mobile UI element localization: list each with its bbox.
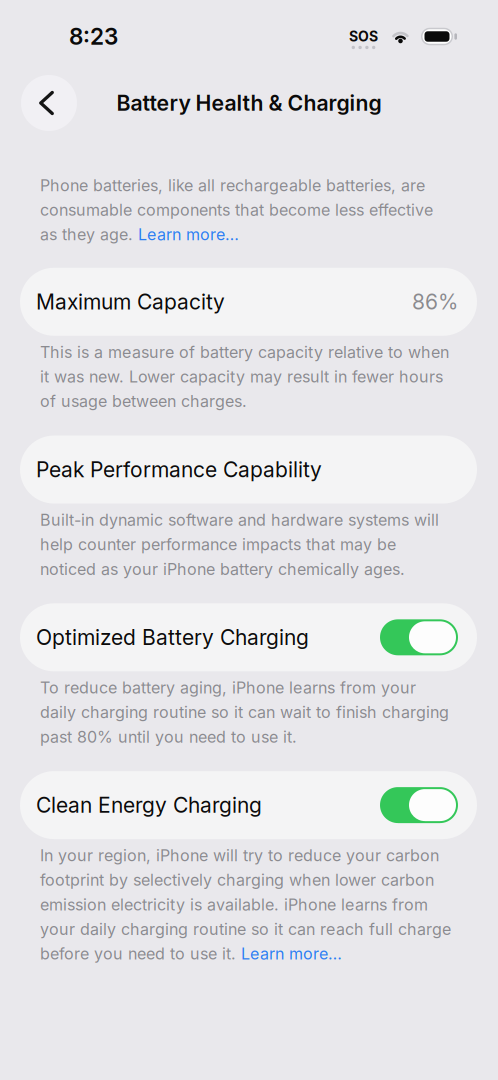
button[interactable]: Maximum Capacity bbox=[20, 268, 477, 336]
staticText: Battery Health & Charging bbox=[116, 90, 381, 116]
staticText: 86% bbox=[412, 289, 458, 314]
staticText: Built-in dynamic software and hardware s… bbox=[40, 508, 439, 581]
staticText: Optimized Battery Charging bbox=[36, 625, 309, 650]
staticText: 8:23 bbox=[69, 23, 118, 50]
staticText: Maximum Capacity bbox=[36, 289, 225, 314]
staticText: SOS bbox=[349, 28, 378, 45]
staticText: Phone batteries, like all rechargeable b… bbox=[40, 173, 433, 247]
button[interactable]: Back bbox=[21, 75, 77, 131]
staticText: Peak Performance Capability bbox=[36, 457, 322, 482]
button[interactable]: Optimized Battery Charging bbox=[20, 603, 477, 671]
staticText: To reduce battery aging, iPhone learns f… bbox=[40, 675, 449, 749]
button[interactable]: Clean Energy Charging bbox=[20, 771, 477, 839]
staticText: Clean Energy Charging bbox=[36, 792, 262, 818]
staticText: This is a measure of battery capacity re… bbox=[40, 340, 449, 414]
staticText: In your region, iPhone will try to reduc… bbox=[40, 843, 451, 966]
button[interactable]: Peak Performance Capability bbox=[20, 436, 477, 504]
